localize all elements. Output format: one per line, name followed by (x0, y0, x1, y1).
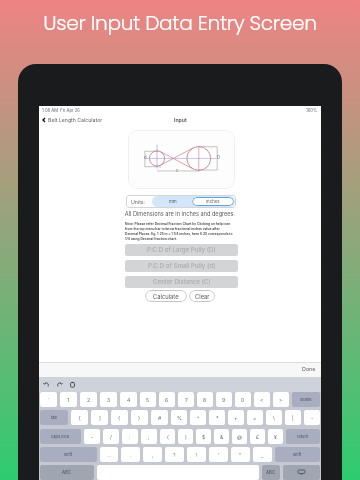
button[interactable]: } (131, 410, 148, 425)
staticText: @ (237, 434, 242, 440)
button[interactable]: : (122, 429, 138, 444)
button[interactable]: Center Distance (C) (125, 276, 238, 288)
staticText: User Input Data Entry Screen (0, 9, 360, 37)
button[interactable]: … (100, 447, 118, 462)
staticText: + (234, 415, 238, 421)
button[interactable]: ( (160, 429, 175, 444)
staticText: 0 (241, 397, 245, 403)
staticText: ; (148, 434, 150, 440)
staticText: return (297, 434, 309, 439)
button[interactable]: * (209, 410, 225, 425)
button[interactable]: Redo (56, 381, 63, 388)
button[interactable]: < (254, 392, 270, 407)
button[interactable]: P.C.D of Small Pully (d) (125, 260, 238, 272)
button[interactable]: shift (40, 447, 97, 462)
staticText: mm (169, 199, 177, 204)
staticText: tab (51, 415, 58, 420)
button[interactable]: tab (40, 410, 68, 425)
button[interactable]: return (286, 429, 320, 444)
button[interactable]: £ (250, 429, 265, 444)
button[interactable]: % (171, 410, 187, 425)
button[interactable]: $ (196, 429, 211, 444)
button[interactable]: Done (302, 366, 321, 373)
button[interactable]: 1 (60, 392, 77, 407)
button[interactable]: 5 (140, 392, 156, 407)
button[interactable]: Belt Length Calculator (42, 114, 103, 125)
staticText: £ (256, 434, 260, 440)
staticText: - (311, 415, 314, 421)
staticText: . (130, 452, 132, 458)
button[interactable]: 3 (100, 392, 117, 407)
button[interactable]: ` (40, 392, 57, 407)
button[interactable]: delete (292, 392, 320, 407)
staticText: … (107, 452, 112, 458)
button[interactable]: 7 (178, 392, 194, 407)
button[interactable]: " (231, 447, 250, 462)
button[interactable]: | (285, 410, 301, 425)
button[interactable]: { (111, 410, 128, 425)
button[interactable]: shift (275, 447, 320, 462)
staticText: \ (273, 415, 275, 421)
button[interactable]: ¥ (268, 429, 283, 444)
button[interactable]: 8 (197, 392, 213, 407)
staticText: : (129, 434, 131, 440)
button[interactable]: Paste (69, 381, 76, 388)
button[interactable]: 4 (120, 392, 137, 407)
staticText: # (158, 415, 162, 421)
button[interactable]: - (304, 410, 320, 425)
staticText: Calculate (153, 293, 179, 300)
button[interactable]: _ (253, 447, 272, 462)
button[interactable]: ; (141, 429, 157, 444)
staticText: _ (261, 452, 264, 458)
button[interactable]: 0 (235, 392, 251, 407)
staticText: Belt Length Calculator (48, 117, 103, 123)
staticText: { (118, 415, 121, 421)
button[interactable]: Calculate (145, 290, 187, 302)
button[interactable]: + (228, 410, 244, 425)
button[interactable]: 2 (80, 392, 97, 407)
staticText: Note: Please refer Decimal Fraction Char… (125, 222, 233, 241)
staticText: 7 (185, 397, 188, 403)
button[interactable]: ABC (262, 465, 280, 480)
staticText: ? (173, 452, 176, 458)
button[interactable]: # (151, 410, 168, 425)
staticText: Input (174, 117, 187, 123)
button[interactable]: \ (266, 410, 282, 425)
button[interactable]: mm (153, 197, 192, 206)
button[interactable]: > (273, 392, 289, 407)
button[interactable]: ^ (190, 410, 206, 425)
staticText: ! (196, 452, 198, 458)
button[interactable]: / (103, 429, 119, 444)
button[interactable]: Hide keyboard (283, 465, 320, 480)
button[interactable]: & (214, 429, 229, 444)
button[interactable]: Clear (189, 290, 215, 302)
button[interactable]: , (143, 447, 162, 462)
staticText: ' (218, 452, 220, 458)
button[interactable]: = (247, 410, 263, 425)
button[interactable]: 6 (159, 392, 175, 407)
staticText: 1 (67, 397, 70, 403)
button[interactable]: caps lock (40, 429, 81, 444)
button[interactable]: P.C.D of Large Pully (D) (125, 244, 238, 256)
staticText: - (91, 434, 94, 440)
button[interactable]: ! (187, 447, 206, 462)
staticText: D (217, 155, 221, 160)
staticText: All Dimensions are in inches and degrees… (39, 211, 321, 218)
button[interactable]: ABC (40, 465, 94, 480)
button[interactable]: ' (209, 447, 228, 462)
button[interactable]: - (84, 429, 100, 444)
staticText: Center Distance (C) (153, 278, 211, 286)
button[interactable]: 9 (216, 392, 232, 407)
button[interactable]: ? (165, 447, 184, 462)
staticText: ) (185, 434, 187, 440)
button[interactable]: Undo (43, 381, 50, 388)
button[interactable]: . (121, 447, 140, 462)
button[interactable]: ] (91, 410, 108, 425)
staticText: ( (167, 434, 169, 440)
button[interactable]: @ (232, 429, 247, 444)
staticText: 8 (203, 397, 207, 403)
button[interactable]: [ (71, 410, 88, 425)
button[interactable]: inches (192, 197, 234, 206)
button[interactable]: ) (178, 429, 193, 444)
